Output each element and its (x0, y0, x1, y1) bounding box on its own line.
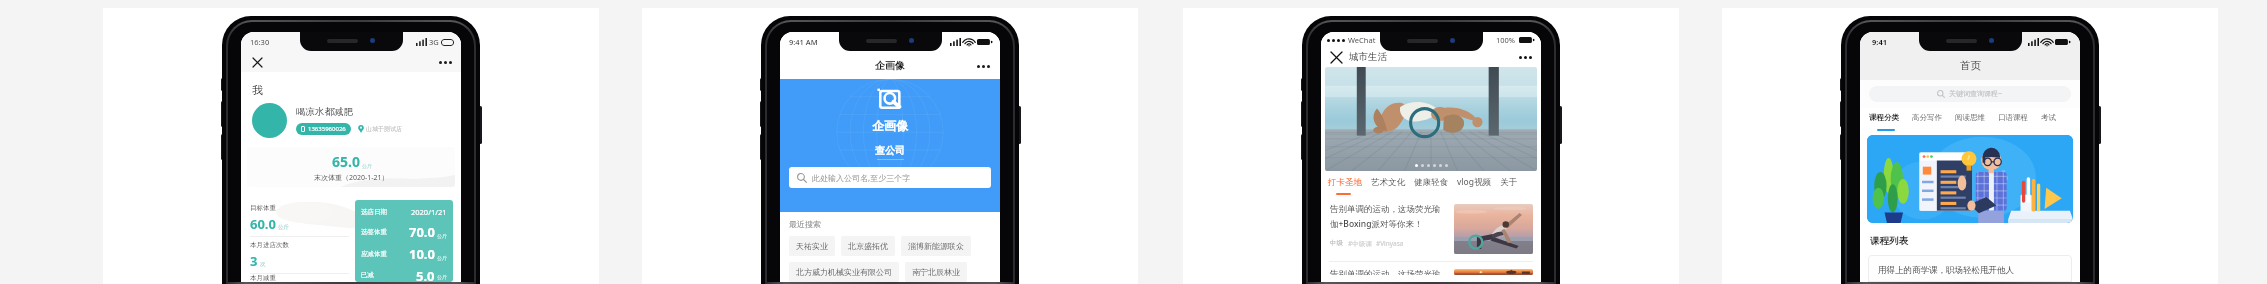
button[interactable]: 高分写作 (1912, 113, 1942, 122)
staticText: #中级课 (1348, 239, 1372, 248)
button[interactable]: 告别单调的运动，这场荧光瑜伽+Boxing派对等你来！ (1330, 204, 1533, 254)
staticText: #Vinyasa (1376, 239, 1404, 248)
button[interactable]: Close (250, 55, 264, 69)
staticText: 查公司 (875, 144, 905, 157)
button[interactable]: 口语课程 (1998, 113, 2028, 122)
button[interactable]: 北京盛拓优 (841, 236, 895, 256)
staticText: 口语课程 (1998, 113, 2028, 122)
button[interactable]: 此处输入公司名,至少三个字 (789, 167, 991, 188)
staticText: 次 (260, 261, 266, 268)
staticText: 天祐实业 (796, 241, 828, 251)
button[interactable]: 艺术文化 (1371, 177, 1405, 188)
button[interactable]: 打卡圣地 (1328, 177, 1362, 188)
staticText: 16:30 (250, 37, 270, 47)
button[interactable]: 关键词查询课程~ (1869, 86, 2071, 102)
staticText: 公斤 (278, 224, 289, 231)
button[interactable]: 北方威力机械实业有限公司 (789, 262, 899, 282)
staticText: 最近搜索 (789, 219, 821, 229)
button[interactable]: 天祐实业 (789, 236, 835, 256)
staticText: 选签体重 (361, 228, 387, 236)
staticText: 淄博新能源联众 (908, 241, 964, 251)
staticText: 中级 (1330, 239, 1343, 247)
button[interactable]: Close (1329, 50, 1344, 65)
staticText: 本月进店次数 (250, 241, 289, 249)
staticText: 关键词查询课程~ (1949, 89, 2003, 99)
staticText: 3G (429, 37, 439, 47)
staticText: 课程分类 (1869, 113, 1899, 122)
staticText: 公斤 (437, 255, 447, 261)
staticText: 公斤 (437, 233, 447, 239)
button[interactable]: 课程分类 (1869, 113, 1899, 122)
staticText: 北方威力机械实业有限公司 (796, 267, 892, 277)
staticText: 我 (252, 83, 263, 97)
staticText: 健康轻食 (1414, 177, 1448, 188)
staticText: 目标体重 (250, 204, 276, 212)
staticText: vlog视频 (1457, 176, 1491, 188)
staticText: 3 (250, 252, 258, 270)
staticText: 告别单调的运动，这场荧光瑜伽+Boxing派对等你来！ (1330, 269, 1448, 275)
staticText: 告别单调的运动，这场荧光瑜伽+Boxing派对等你来！ (1330, 204, 1448, 230)
staticText: 9:41 (1872, 37, 1887, 47)
staticText: 喝凉水都减肥 (296, 106, 353, 118)
staticText: 末次体重（2020-1-21） (314, 173, 389, 183)
button[interactable]: More (975, 58, 991, 74)
button[interactable]: 南宁北辰林业 (905, 262, 967, 282)
button[interactable]: 考试 (2041, 113, 2056, 122)
staticText: 南宁北辰林业 (912, 267, 960, 277)
staticText: 9:41 AM (789, 37, 818, 47)
staticText: 打卡圣地 (1328, 177, 1362, 188)
staticText: 北京盛拓优 (848, 241, 888, 251)
staticText: 企画像 (875, 59, 905, 72)
button[interactable]: More (1518, 50, 1533, 65)
button[interactable]: 阅读思维 (1955, 113, 1985, 122)
staticText: WeChat (1348, 35, 1376, 45)
button[interactable]: 淄博新能源联众 (901, 236, 971, 256)
staticText: 100% (1496, 35, 1516, 45)
staticText: 高分写作 (1912, 113, 1942, 122)
staticText: 课程列表 (1870, 235, 1908, 247)
staticText: 已减 (361, 271, 374, 279)
button[interactable]: 关于 (1500, 177, 1517, 188)
staticText: 用得上的商学课，职场轻松甩开他人 (1878, 265, 2014, 276)
button[interactable]: More (438, 55, 452, 69)
button[interactable]: 健康轻食 (1414, 177, 1448, 188)
staticText: 5.0 (416, 267, 435, 282)
staticText: 此处输入公司名,至少三个字 (812, 172, 911, 183)
staticText: 考试 (2041, 113, 2056, 122)
button[interactable]: vlog视频 (1457, 176, 1491, 188)
staticText: 山城于测试店 (366, 125, 402, 133)
button[interactable]: 告别单调的运动，这场荧光瑜伽+Boxing派对等你来！ (1330, 269, 1533, 275)
button[interactable] (1867, 135, 2073, 223)
staticText: 阅读思维 (1955, 113, 1985, 122)
staticText: 城市生活 (1349, 51, 1387, 63)
staticText: 13635960026 (308, 125, 346, 133)
staticText: 公斤 (437, 274, 447, 280)
staticText: 70.0 (409, 223, 435, 241)
staticText: 10.0 (409, 245, 435, 263)
staticText: 应减体重 (361, 250, 387, 258)
button[interactable]: 用得上的商学课，职场轻松甩开他人 (1868, 255, 2072, 282)
staticText: 本月减重 (250, 274, 276, 282)
staticText: 公斤 (362, 163, 372, 169)
staticText: 选店日期 (361, 208, 387, 216)
staticText: 艺术文化 (1371, 177, 1405, 188)
staticText: 关于 (1500, 177, 1517, 188)
staticText: 企画像 (872, 118, 908, 133)
staticText: 60.0 (250, 215, 276, 233)
button[interactable]: 65.0 (247, 147, 455, 187)
staticText: 65.0 (332, 152, 360, 171)
staticText: 2020/1/21 (411, 207, 447, 217)
staticText: 首页 (1960, 59, 1981, 72)
